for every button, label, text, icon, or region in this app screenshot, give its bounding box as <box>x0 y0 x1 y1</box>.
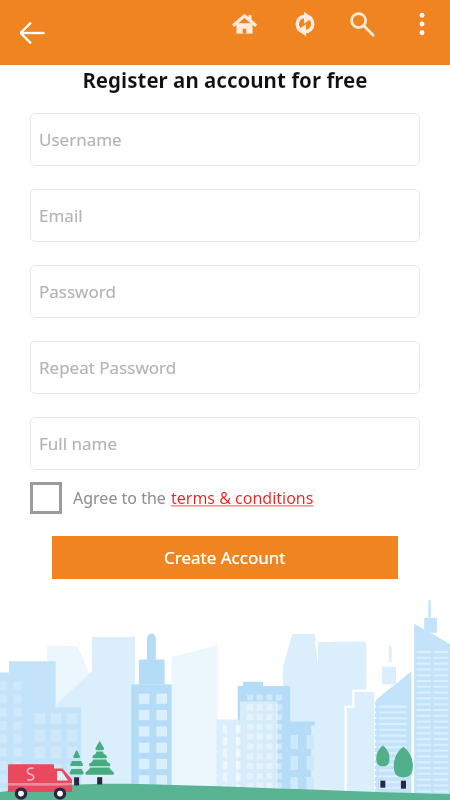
button[interactable]: Full name <box>30 417 420 470</box>
button[interactable]: Create Account <box>52 536 398 579</box>
staticText: Register an account for free <box>0 66 450 94</box>
button[interactable]: Search <box>338 0 386 48</box>
button[interactable]: Home <box>221 0 269 48</box>
button[interactable] <box>30 482 62 514</box>
button[interactable]: Back <box>8 9 56 57</box>
staticText: Create Account <box>164 546 286 569</box>
button[interactable]: Password <box>30 265 420 318</box>
staticText: Email <box>39 204 83 227</box>
staticText: Repeat Password <box>39 356 177 379</box>
button[interactable]: terms & conditions <box>171 487 314 509</box>
staticText: Agree to the <box>73 487 171 509</box>
button[interactable]: Refresh <box>281 0 329 48</box>
staticText: Full name <box>39 432 118 455</box>
staticText: Password <box>39 280 116 303</box>
staticText: Username <box>39 128 122 151</box>
button[interactable]: More options <box>398 0 446 48</box>
button[interactable]: Repeat Password <box>30 341 420 394</box>
button[interactable]: Username <box>30 113 420 166</box>
button[interactable]: Email <box>30 189 420 242</box>
